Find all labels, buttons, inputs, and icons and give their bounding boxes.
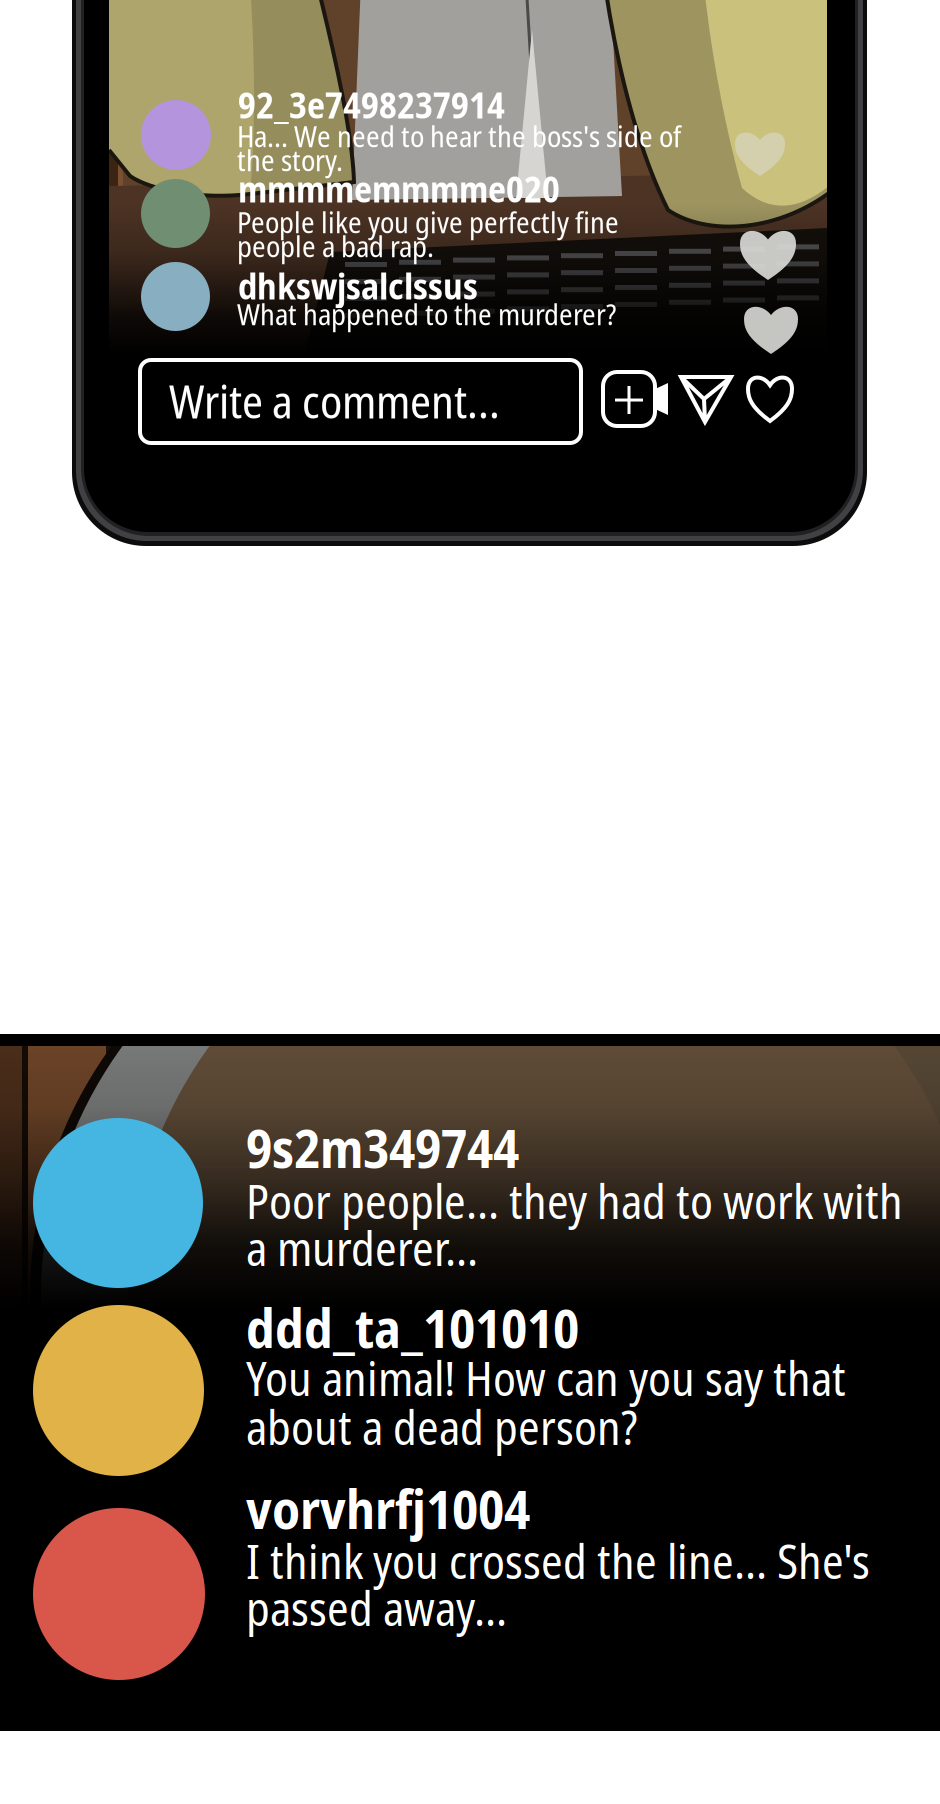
button[interactable]: Send (678, 373, 734, 425)
staticText: mmmmemmmme020 (238, 164, 560, 213)
staticText: Write a comment... (169, 370, 500, 432)
staticText: vorvhrfj1004 (246, 1472, 530, 1545)
staticText: about a dead person? (246, 1395, 637, 1459)
staticText: ddd_ta_101010 (246, 1291, 579, 1364)
staticText: passed away... (246, 1576, 507, 1640)
staticText: I think you crossed the line... She's (246, 1529, 870, 1593)
staticText: People like you give perfectly fine (237, 202, 619, 242)
button[interactable]: Write a comment... (139, 359, 582, 444)
button[interactable]: Go live (603, 371, 669, 427)
staticText: 92_3e7498237914 (238, 80, 505, 129)
staticText: You animal! How can you say that (246, 1346, 846, 1410)
staticText: Poor people... they had to work with (246, 1169, 903, 1233)
staticText: a murderer... (246, 1216, 478, 1280)
staticText: the story. (237, 140, 343, 180)
staticText: dhkswjsalclssus (238, 261, 478, 310)
staticText: Ha... We need to hear the boss's side of (237, 116, 681, 156)
button[interactable]: Like (746, 373, 794, 423)
staticText: What happened to the murderer? (237, 294, 616, 334)
staticText: people a bad rap. (237, 226, 434, 266)
staticText: 9s2m349744 (246, 1111, 519, 1184)
